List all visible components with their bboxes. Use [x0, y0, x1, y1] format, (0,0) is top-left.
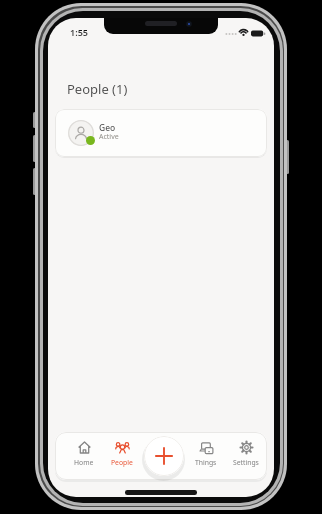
staticText: Geo	[99, 122, 116, 134]
button[interactable]: Home	[62, 440, 106, 478]
staticText: People (1)	[67, 80, 128, 98]
button[interactable]: People	[100, 440, 144, 478]
staticText: 1:55	[70, 26, 88, 38]
button[interactable]: Settings	[224, 440, 267, 478]
staticText: Home	[74, 458, 94, 467]
button[interactable]: Things	[184, 440, 228, 478]
staticText: Active	[99, 132, 119, 142]
staticText: Settings	[233, 458, 259, 467]
staticText: People	[111, 458, 133, 467]
button[interactable]: Geo	[55, 109, 267, 157]
staticText: Things	[195, 458, 217, 467]
button[interactable]	[144, 436, 184, 476]
